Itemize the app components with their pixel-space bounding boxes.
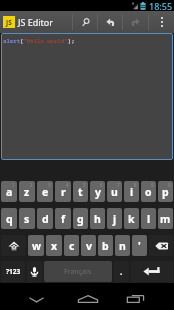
- button[interactable]: Backspace: [149, 235, 173, 256]
- button[interactable]: Undo: [98, 11, 122, 33]
- staticText: 8: [134, 182, 137, 188]
- staticText: p: [162, 185, 169, 199]
- button[interactable]: e: [37, 181, 53, 202]
- staticText: v: [86, 239, 92, 253]
- button[interactable]: b: [98, 235, 113, 256]
- staticText: ?123: [6, 267, 21, 276]
- button[interactable]: Enter: [131, 261, 173, 282]
- button[interactable]: z: [19, 181, 35, 202]
- staticText: n: [119, 239, 126, 253]
- button[interactable]: Français: [44, 261, 112, 282]
- staticText: l: [147, 212, 151, 226]
- staticText: e: [42, 185, 49, 199]
- staticText: i: [130, 185, 134, 199]
- button[interactable]: ?123: [1, 261, 25, 282]
- button[interactable]: k: [124, 208, 139, 229]
- button[interactable]: .: [114, 261, 129, 282]
- button[interactable]: v: [81, 235, 96, 256]
- button[interactable]: n: [115, 235, 130, 256]
- button[interactable]: Recent apps: [109, 285, 161, 310]
- staticText: g: [77, 212, 84, 226]
- staticText: alert("Hello world");: [3, 37, 75, 45]
- staticText: h: [94, 212, 101, 226]
- button[interactable]: JS: [0, 11, 57, 33]
- button[interactable]: u: [107, 181, 122, 202]
- staticText: a: [6, 185, 13, 199]
- button[interactable]: y: [90, 181, 105, 202]
- staticText: s: [24, 212, 30, 226]
- button[interactable]: Back: [10, 285, 62, 310]
- staticText: ': [138, 239, 141, 253]
- button[interactable]: m: [158, 208, 173, 229]
- staticText: 0: [168, 182, 171, 188]
- staticText: 6: [100, 182, 103, 188]
- staticText: r: [61, 185, 66, 199]
- staticText: 7: [117, 182, 120, 188]
- button[interactable]: Redo: [123, 11, 148, 33]
- button[interactable]: ': [132, 235, 147, 256]
- button[interactable]: x: [46, 235, 62, 256]
- button[interactable]: r: [55, 181, 71, 202]
- staticText: b: [102, 239, 109, 253]
- button[interactable]: s: [19, 208, 35, 229]
- button[interactable]: i: [124, 181, 139, 202]
- button[interactable]: More options: [149, 11, 174, 33]
- button[interactable]: j: [107, 208, 122, 229]
- button[interactable]: d: [37, 208, 53, 229]
- button[interactable]: o: [141, 181, 156, 202]
- staticText: JS Editor: [18, 16, 54, 28]
- staticText: 2: [30, 182, 33, 188]
- staticText: q: [6, 212, 13, 226]
- staticText: 5: [83, 182, 86, 188]
- button[interactable]: f: [55, 208, 71, 229]
- staticText: o: [145, 185, 152, 199]
- button[interactable]: Home: [62, 285, 114, 310]
- button[interactable]: l: [141, 208, 156, 229]
- staticText: x: [51, 239, 58, 253]
- button[interactable]: Search: [73, 11, 97, 33]
- staticText: JS: [6, 18, 12, 27]
- button[interactable]: q: [1, 208, 17, 229]
- staticText: m: [160, 212, 171, 226]
- staticText: c: [69, 239, 75, 253]
- staticText: d: [42, 212, 49, 226]
- staticText: u: [111, 185, 118, 199]
- staticText: .: [120, 266, 123, 277]
- staticText: Français: [64, 267, 92, 277]
- button[interactable]: g: [73, 208, 88, 229]
- staticText: 9: [151, 182, 154, 188]
- staticText: z: [24, 185, 30, 199]
- button[interactable]: p: [158, 181, 173, 202]
- button[interactable]: a: [1, 181, 17, 202]
- staticText: 18:55: [149, 0, 173, 11]
- staticText: 3: [48, 182, 51, 188]
- staticText: 1: [12, 182, 15, 188]
- button[interactable]: c: [64, 235, 79, 256]
- button[interactable]: t: [73, 181, 88, 202]
- staticText: y: [95, 185, 101, 199]
- staticText: j: [113, 212, 117, 226]
- button[interactable]: h: [90, 208, 105, 229]
- button[interactable]: Shift: [1, 235, 26, 256]
- button[interactable]: Voice input: [27, 261, 42, 282]
- button[interactable]: w: [28, 235, 44, 256]
- staticText: f: [61, 212, 66, 226]
- staticText: w: [32, 239, 41, 253]
- staticText: 4: [66, 182, 69, 188]
- staticText: k: [128, 212, 135, 226]
- staticText: t: [78, 185, 83, 199]
